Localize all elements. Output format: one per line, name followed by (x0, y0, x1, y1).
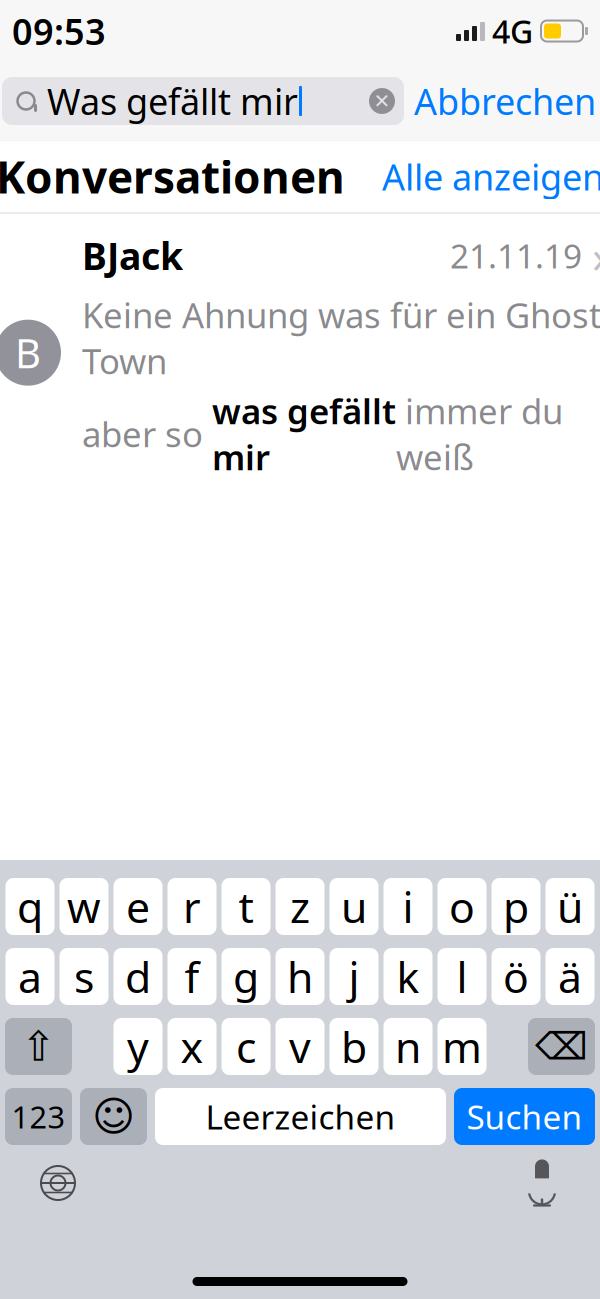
staticText: i (402, 878, 413, 935)
staticText: B (15, 326, 41, 379)
staticText: a (18, 948, 42, 1005)
staticText: d (125, 948, 151, 1005)
button[interactable]: p (491, 878, 540, 935)
button[interactable]: y (113, 1018, 162, 1075)
button[interactable]: u (329, 878, 378, 935)
button[interactable]: r (167, 878, 216, 935)
staticText: ☺ (92, 1093, 135, 1140)
staticText: z (290, 878, 310, 935)
button[interactable]: w (59, 878, 108, 935)
staticText: h (287, 948, 313, 1005)
staticText: was gefällt mir (212, 388, 396, 480)
button[interactable]: f (167, 948, 216, 1005)
button[interactable]: ü (545, 878, 594, 935)
button[interactable]: o (437, 878, 486, 935)
button[interactable]: q (5, 878, 54, 935)
button[interactable]: Clear text (360, 77, 404, 125)
staticText: ✕ (373, 90, 390, 112)
staticText: c (236, 1018, 256, 1075)
button[interactable]: m (437, 1018, 486, 1075)
staticText: b (341, 1018, 367, 1075)
button[interactable]: B (0, 213, 600, 494)
staticText: Leerzeichen (205, 1094, 395, 1139)
staticText: ü (557, 878, 583, 935)
staticText: t (238, 878, 253, 935)
staticText: Alle anzeigen (382, 153, 600, 200)
button[interactable]: l (437, 948, 486, 1005)
staticText: k (396, 948, 419, 1005)
button[interactable]: Abbrechen (404, 77, 600, 125)
button[interactable]: s (59, 948, 108, 1005)
button[interactable]: h (275, 948, 324, 1005)
staticText: 123 (11, 1096, 65, 1137)
button[interactable]: Delete (528, 1018, 595, 1075)
button[interactable]: Alle anzeigen (382, 153, 600, 200)
button[interactable]: t (221, 878, 270, 935)
staticText: j (348, 948, 359, 1005)
staticText: o (449, 878, 475, 935)
staticText: y (127, 1018, 149, 1075)
staticText: p (503, 878, 529, 935)
button[interactable]: b (329, 1018, 378, 1075)
staticText: ⌫ (535, 1025, 588, 1068)
button[interactable]: Suchen (454, 1088, 595, 1145)
staticText: immer du weiß (396, 388, 563, 480)
button[interactable]: c (221, 1018, 270, 1075)
button[interactable]: d (113, 948, 162, 1005)
button[interactable]: Shift (5, 1018, 72, 1075)
staticText: Konversationen (0, 147, 345, 206)
staticText: aber so (82, 411, 212, 457)
staticText: m (442, 1018, 482, 1075)
staticText: r (183, 878, 201, 935)
staticText: 21.11.19 (450, 233, 582, 278)
button[interactable]: k (383, 948, 432, 1005)
button[interactable]: Numbers (5, 1088, 72, 1145)
button[interactable]: Dictation (514, 1155, 570, 1211)
staticText: Abbrechen (414, 77, 596, 125)
button[interactable]: ä (545, 948, 594, 1005)
staticText: w (67, 878, 101, 935)
staticText: s (74, 948, 94, 1005)
staticText: q (17, 878, 43, 935)
button[interactable]: Leerzeichen (155, 1088, 446, 1145)
button[interactable]: a (5, 948, 54, 1005)
button[interactable]: e (113, 878, 162, 935)
button[interactable]: v (275, 1018, 324, 1075)
button[interactable]: x (167, 1018, 216, 1075)
staticText: 4G (492, 10, 533, 52)
staticText: v (289, 1018, 311, 1075)
staticText: n (395, 1018, 421, 1075)
staticText: BJack (82, 231, 183, 280)
button[interactable]: Change keyboard (30, 1155, 86, 1211)
button[interactable]: j (329, 948, 378, 1005)
staticText: ö (503, 948, 529, 1005)
staticText: 09:53 (12, 7, 106, 55)
staticText: Was gefällt mir (47, 77, 298, 125)
staticText: › (592, 225, 600, 286)
staticText: Suchen (466, 1094, 582, 1139)
button[interactable]: Emoji (80, 1088, 147, 1145)
staticText: Keine Ahnung was für ein Ghost Town (82, 292, 600, 384)
button[interactable]: g (221, 948, 270, 1005)
staticText: u (341, 878, 367, 935)
button[interactable]: n (383, 1018, 432, 1075)
staticText: ä (558, 948, 582, 1005)
staticText: x (180, 1018, 203, 1075)
button[interactable]: i (383, 878, 432, 935)
staticText: g (233, 948, 259, 1005)
staticText: l (456, 948, 467, 1005)
staticText: ⇧ (21, 1023, 56, 1070)
staticText: f (184, 948, 199, 1005)
staticText: e (126, 878, 150, 935)
button[interactable]: z (275, 878, 324, 935)
button[interactable]: ö (491, 948, 540, 1005)
